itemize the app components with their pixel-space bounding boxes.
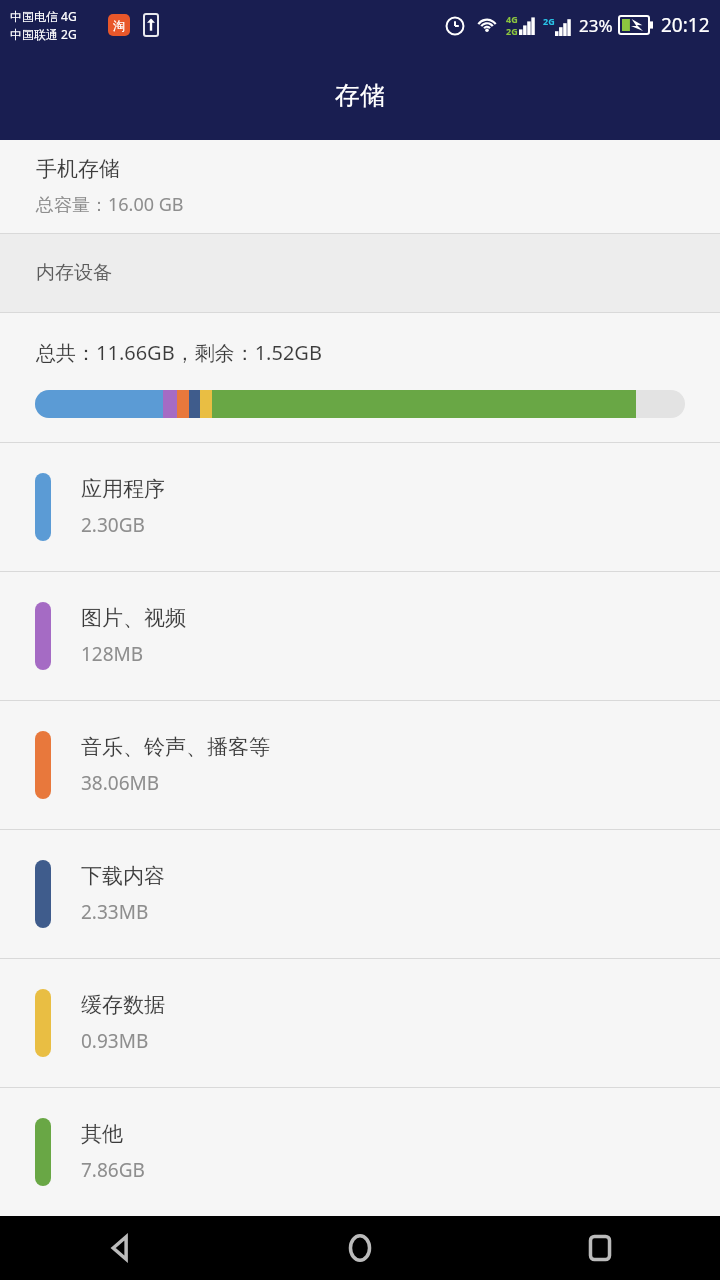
button[interactable]: Home (240, 1216, 480, 1280)
staticText: 2G (543, 15, 555, 27)
staticText: 2G (506, 25, 518, 37)
staticText: 其他 (81, 1121, 123, 1147)
button[interactable]: 总共：11.66GB，剩余：1.52GB (0, 313, 720, 442)
button[interactable]: Recent apps (480, 1216, 720, 1280)
staticText: 0.93MB (81, 1028, 149, 1054)
staticText: 缓存数据 (81, 992, 165, 1018)
staticText: 存储 (335, 80, 385, 111)
staticText: 128MB (81, 641, 144, 667)
staticText: 中国电信 4G (10, 8, 77, 24)
staticText: 20:12 (661, 12, 710, 38)
staticText: 内存设备 (36, 261, 112, 285)
staticText: 下载内容 (81, 863, 165, 889)
button[interactable]: 其他 (0, 1088, 720, 1216)
button[interactable]: 下载内容 (0, 830, 720, 958)
button[interactable]: 图片、视频 (0, 572, 720, 700)
staticText: 图片、视频 (81, 605, 186, 631)
staticText: 2.30GB (81, 512, 145, 538)
staticText: 2.33MB (81, 899, 149, 925)
staticText: 淘 (113, 18, 125, 33)
staticText: 38.06MB (81, 770, 160, 796)
button[interactable]: 应用程序 (0, 443, 720, 571)
staticText: 手机存储 (36, 156, 120, 182)
staticText: 23% (579, 14, 613, 37)
staticText: 4G (506, 13, 518, 25)
staticText: 音乐、铃声、播客等 (81, 734, 270, 760)
button[interactable]: 手机存储 (0, 140, 720, 233)
staticText: 应用程序 (81, 476, 165, 502)
button[interactable]: Back (0, 1216, 240, 1280)
staticText: 总共：11.66GB，剩余：1.52GB (36, 339, 322, 366)
staticText: 中国联通 2G (10, 26, 77, 42)
staticText: 总容量：16.00 GB (36, 192, 184, 217)
button[interactable]: 缓存数据 (0, 959, 720, 1087)
button[interactable]: 音乐、铃声、播客等 (0, 701, 720, 829)
staticText: 7.86GB (81, 1157, 145, 1183)
